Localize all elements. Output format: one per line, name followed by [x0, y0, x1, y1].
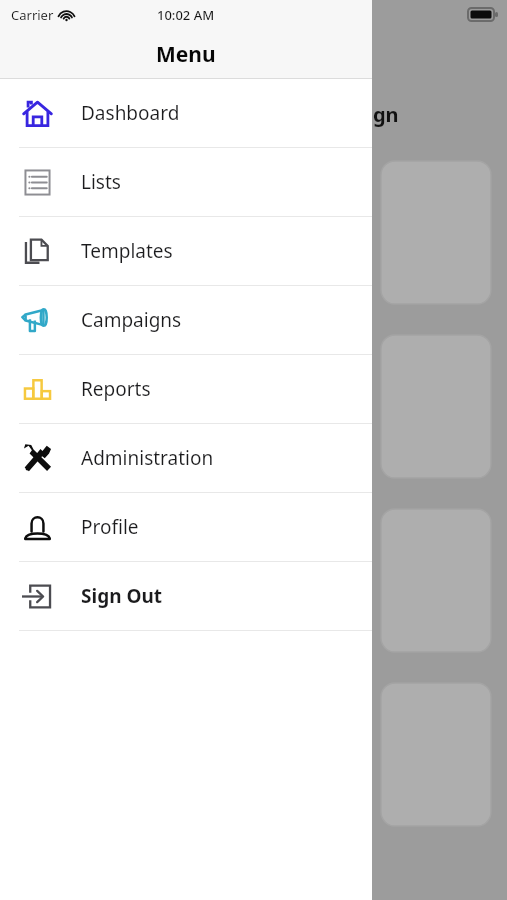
- button[interactable]: Sign Out: [0, 562, 372, 631]
- staticText: Campaigns: [81, 307, 182, 333]
- button[interactable]: Administration: [0, 424, 372, 493]
- staticText: Reports: [81, 376, 151, 402]
- staticText: Menu: [156, 40, 216, 69]
- button[interactable]: Reports: [0, 355, 372, 424]
- staticText: Dashboard: [81, 100, 180, 126]
- staticText: Lists: [81, 169, 121, 195]
- staticText: Carrier: [11, 6, 54, 24]
- staticText: Administration: [81, 445, 214, 471]
- button[interactable]: Lists: [0, 148, 372, 217]
- button[interactable]: Profile: [0, 493, 372, 562]
- staticText: 10:02 AM: [157, 6, 215, 24]
- staticText: Sign Out: [81, 583, 163, 609]
- staticText: Templates: [81, 238, 173, 264]
- staticText: Profile: [81, 514, 139, 540]
- button[interactable]: Dashboard: [0, 79, 372, 148]
- staticText: Campaign: [298, 101, 399, 128]
- button[interactable]: Campaigns: [0, 286, 372, 355]
- button[interactable]: Templates: [0, 217, 372, 286]
